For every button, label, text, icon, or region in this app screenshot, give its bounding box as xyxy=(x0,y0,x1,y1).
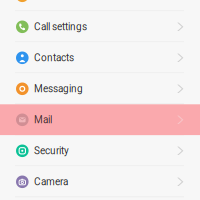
button[interactable]: Mi Cloud xyxy=(0,0,200,11)
button[interactable]: Mail xyxy=(0,104,200,135)
staticText: Security xyxy=(34,145,69,157)
button[interactable]: Contacts xyxy=(0,42,200,73)
staticText: Messaging xyxy=(34,83,83,95)
staticText: Mail xyxy=(34,114,52,126)
button[interactable]: Call settings xyxy=(0,11,200,42)
button[interactable]: Camera xyxy=(0,166,200,197)
button[interactable]: Security xyxy=(0,135,200,166)
button[interactable]: Messaging xyxy=(0,73,200,104)
staticText: Contacts xyxy=(34,52,74,64)
staticText: Camera xyxy=(34,176,68,188)
staticText: Call settings xyxy=(34,21,87,33)
